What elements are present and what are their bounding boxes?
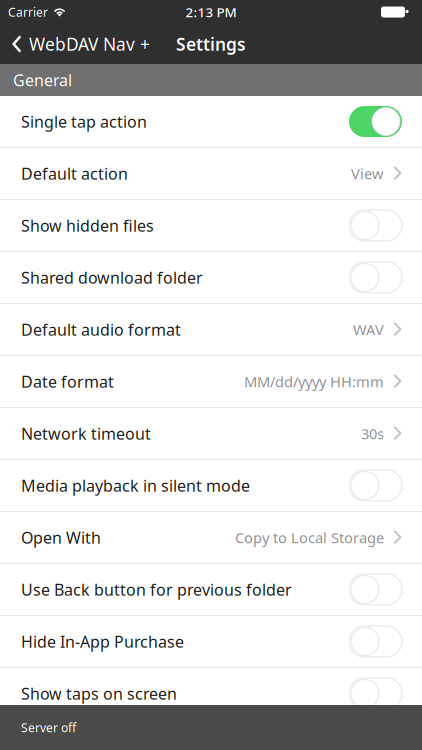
staticText: Date format bbox=[21, 371, 114, 392]
staticText: Default audio format bbox=[21, 319, 181, 340]
staticText: 2:13 PM bbox=[185, 3, 236, 21]
button[interactable]: Default audio format bbox=[0, 304, 422, 355]
staticText: Single tap action bbox=[21, 111, 147, 132]
button[interactable]: Use Back button for previous folder bbox=[0, 564, 422, 615]
staticText: Show taps on screen bbox=[21, 683, 177, 704]
button[interactable]: Media playback in silent mode bbox=[0, 460, 422, 511]
staticText: 30s bbox=[361, 424, 384, 443]
button[interactable]: Single tap action bbox=[0, 96, 422, 147]
button[interactable]: Open With bbox=[0, 512, 422, 563]
staticText: Media playback in silent mode bbox=[21, 475, 250, 496]
staticText: Open With bbox=[21, 527, 101, 548]
button[interactable]: Default action bbox=[0, 148, 422, 199]
staticText: Default action bbox=[21, 163, 128, 184]
staticText: WebDAV Nav + bbox=[29, 32, 150, 55]
staticText: Show hidden files bbox=[21, 215, 154, 236]
button[interactable]: Show taps on screen bbox=[0, 668, 422, 719]
staticText: Carrier bbox=[8, 4, 48, 20]
staticText: Copy to Local Storage bbox=[235, 528, 384, 547]
button[interactable]: Network timeout bbox=[0, 408, 422, 459]
staticText: Settings bbox=[176, 32, 246, 55]
staticText: Shared download folder bbox=[21, 267, 203, 288]
staticText: View bbox=[351, 164, 384, 183]
button[interactable]: Extra bbox=[0, 720, 422, 750]
button[interactable]: Date format bbox=[0, 356, 422, 407]
staticText: MM/dd/yyyy HH:mm bbox=[244, 372, 384, 391]
button[interactable]: Shared download folder bbox=[0, 252, 422, 303]
staticText: Use Back button for previous folder bbox=[21, 579, 292, 600]
button[interactable]: Show hidden files bbox=[0, 200, 422, 251]
staticText: Hide In-App Purchase bbox=[21, 631, 184, 652]
staticText: Server off bbox=[21, 719, 76, 735]
staticText: General bbox=[13, 69, 72, 91]
staticText: WAV bbox=[353, 320, 384, 339]
button[interactable]: Hide In-App Purchase bbox=[0, 616, 422, 667]
staticText: Network timeout bbox=[21, 423, 151, 444]
button[interactable]: WebDAV Nav + bbox=[0, 24, 160, 64]
